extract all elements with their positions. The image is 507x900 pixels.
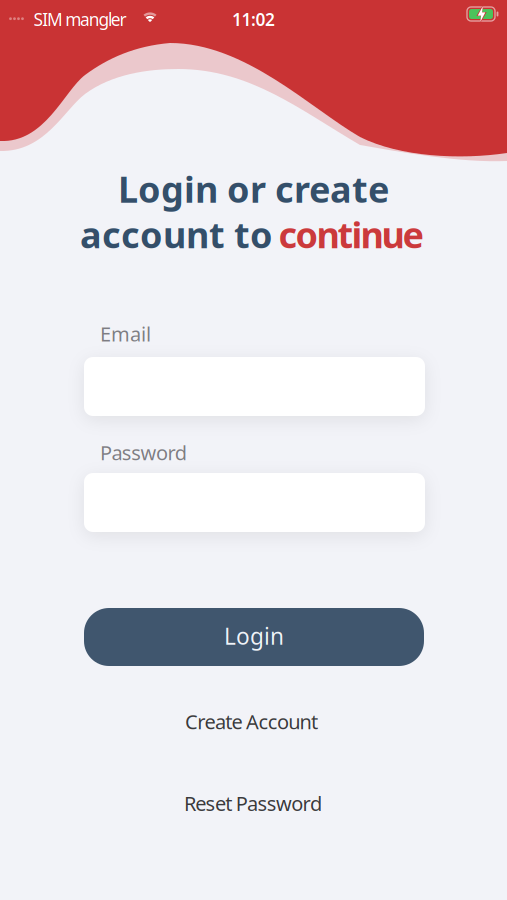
staticText: Login or create: [118, 165, 389, 213]
staticText: SIM mangler: [33, 8, 126, 31]
staticText: continue: [278, 210, 423, 258]
staticText: Password: [100, 439, 187, 466]
staticText: account to: [80, 210, 273, 258]
staticText: Create Account: [185, 708, 318, 735]
staticText: Login: [224, 621, 284, 651]
button[interactable]: Login: [84, 608, 424, 666]
staticText: Email: [100, 320, 151, 347]
staticText: 11:02: [232, 8, 275, 31]
button[interactable]: Create Account: [185, 708, 318, 735]
staticText: Reset Password: [184, 790, 322, 817]
button[interactable]: Reset Password: [184, 790, 322, 817]
